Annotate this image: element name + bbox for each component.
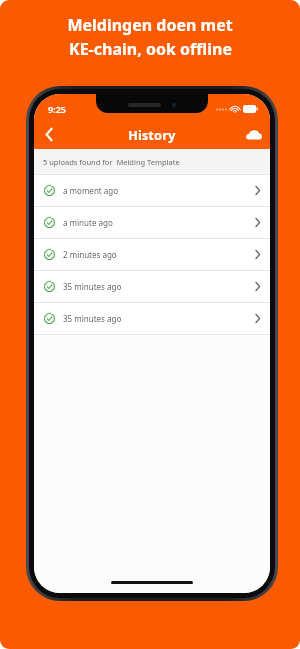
staticText: a moment ago [63,185,119,196]
staticText: Meldingen doen met [67,14,233,36]
staticText: 35 minutes ago [63,313,122,324]
staticText: a minute ago [63,217,113,228]
button[interactable]: 35 minutes ago [34,271,270,302]
button[interactable]: Cloud sync [238,120,270,149]
staticText: 2 minutes ago [63,249,117,260]
button[interactable]: a moment ago [34,175,270,206]
staticText: 5 uploads found for Melding Template [43,157,180,167]
button[interactable]: a minute ago [34,207,270,238]
button[interactable]: 35 minutes ago [34,303,270,334]
button[interactable]: 2 minutes ago [34,239,270,270]
staticText: History [128,126,176,144]
button[interactable]: Back [34,120,64,149]
staticText: KE-chain, ook offline [69,38,232,60]
staticText: 35 minutes ago [63,281,122,292]
staticText: 9:25 [48,103,66,115]
